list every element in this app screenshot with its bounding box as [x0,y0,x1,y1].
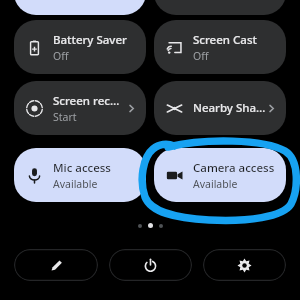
button[interactable]: Edit [14,249,98,281]
staticText: Camera access [193,160,275,176]
staticText: Start [53,110,77,124]
staticText: Off [193,49,209,63]
button[interactable]: Settings [203,249,286,281]
button[interactable]: Screen Cast [154,20,286,74]
button[interactable]: Mic access [14,148,146,202]
button[interactable]: Power [109,249,192,281]
staticText: Available [193,177,238,191]
staticText: Screen record [53,93,126,109]
staticText: Nearby Share [193,100,266,116]
staticText: Available [53,177,98,191]
button[interactable]: Battery Saver [14,20,146,74]
button[interactable] [14,0,146,15]
button[interactable]: Screen record [14,81,146,135]
button[interactable] [154,0,286,15]
staticText: Mic access [53,160,111,176]
staticText: Off [53,49,69,63]
button[interactable]: Nearby Share [154,81,286,135]
staticText: Screen Cast [193,32,257,48]
staticText: Battery Saver [53,32,127,48]
button[interactable]: Camera access [154,148,286,202]
